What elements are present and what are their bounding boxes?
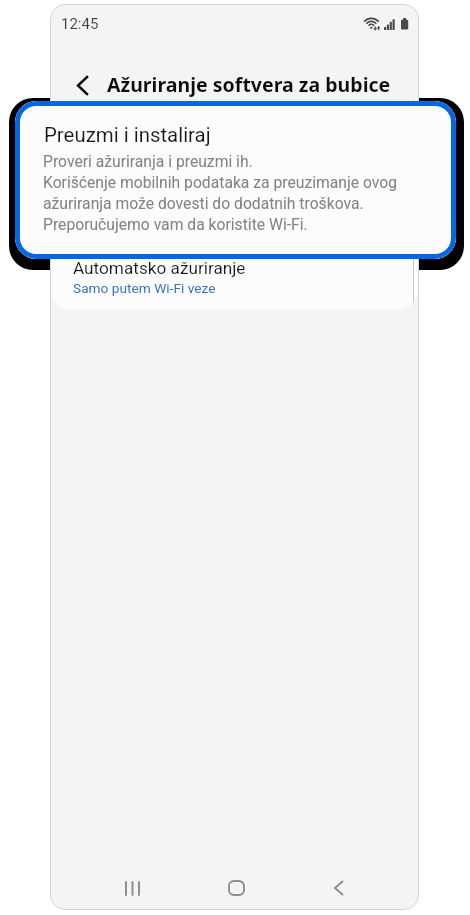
staticText: Automatsko ažuriranje: [73, 258, 246, 278]
staticText: Preuzmi i instaliraj: [74, 112, 215, 132]
staticText: Proveri ažuriranja i preuzmi ih. Korišće…: [43, 152, 398, 234]
staticText: 12:45: [61, 15, 99, 33]
button[interactable]: Recent apps: [106, 862, 158, 910]
button[interactable]: Home: [210, 862, 262, 910]
button[interactable]: Automatsko ažuriranje: [50, 256, 419, 310]
staticText: Preuzmi i instaliraj: [44, 123, 211, 147]
button[interactable]: Preuzmi i instaliraj: [50, 100, 419, 256]
staticText: Samo putem Wi-Fi veze: [73, 280, 216, 296]
staticText: Ažuriranje softvera za bubice: [107, 71, 391, 98]
staticText: Proveri ažuriranja i preuzmi ih. Korišće…: [74, 137, 294, 224]
button[interactable]: Back: [313, 862, 365, 910]
button[interactable]: Back: [62, 65, 102, 105]
